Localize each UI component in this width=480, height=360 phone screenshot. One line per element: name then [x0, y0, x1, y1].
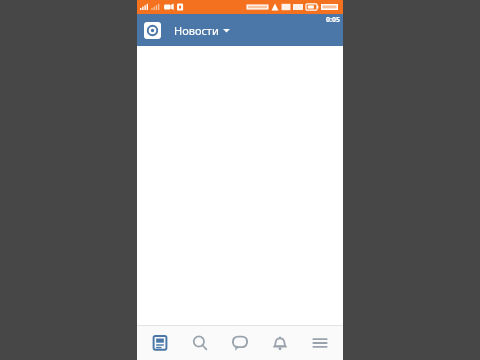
button[interactable]: Новости	[172, 19, 232, 42]
staticText: Новости	[174, 23, 219, 38]
button[interactable]: Search	[183, 326, 217, 360]
staticText: 0:05	[326, 15, 340, 25]
button[interactable]: Profile	[144, 22, 161, 39]
button[interactable]: Menu	[303, 326, 337, 360]
button[interactable]: News	[143, 326, 177, 360]
button[interactable]: Messages	[223, 326, 257, 360]
button[interactable]: Notifications	[263, 326, 297, 360]
